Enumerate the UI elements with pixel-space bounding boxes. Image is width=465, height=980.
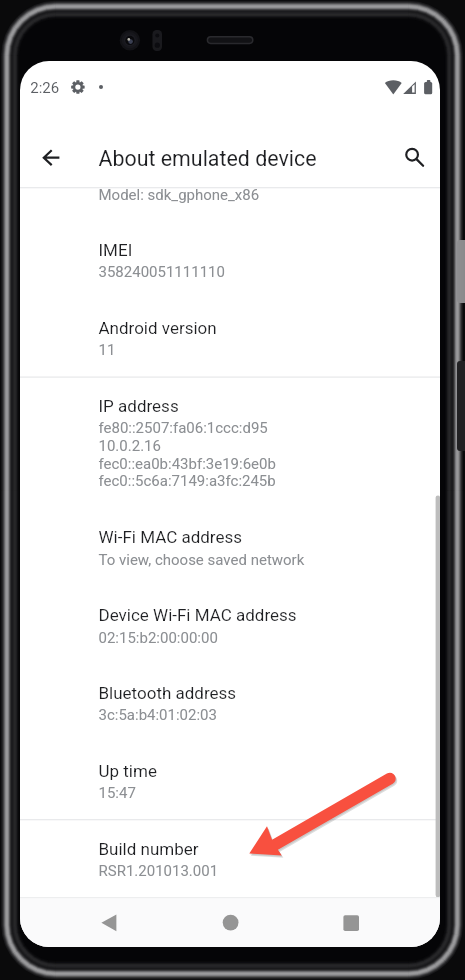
staticText: 02:15:b2:00:00:00 [98, 628, 218, 646]
button[interactable] [20, 663, 440, 741]
button[interactable]: Back [84, 897, 132, 947]
staticText: Up time [98, 761, 157, 781]
staticText: Wi-Fi MAC address [98, 527, 242, 547]
staticText: Model: sdk_gphone_x86 [98, 185, 259, 203]
button[interactable] [20, 819, 440, 897]
button[interactable] [20, 299, 440, 377]
staticText: 10.0.2.16 [98, 437, 161, 455]
button[interactable] [20, 507, 440, 585]
button[interactable] [20, 165, 440, 221]
staticText: 3c:5a:b4:01:02:03 [98, 706, 217, 724]
button[interactable]: Navigate up [26, 134, 74, 182]
button[interactable]: Home [206, 897, 254, 947]
staticText: Build number [98, 839, 199, 859]
staticText: fec0::5c6a:7149:a3fc:245b [98, 472, 276, 490]
staticText: Bluetooth address [98, 683, 236, 703]
staticText: IP address [98, 396, 179, 416]
staticText: 358240051111110 [98, 263, 225, 281]
staticText: 15:47 [98, 784, 136, 802]
button[interactable] [20, 741, 440, 819]
staticText: About emulated device [98, 146, 317, 171]
staticText: 11 [98, 341, 115, 359]
staticText: Android version [98, 318, 217, 338]
button[interactable] [20, 377, 440, 507]
button[interactable] [20, 585, 440, 663]
staticText: To view, choose saved network [98, 551, 304, 569]
staticText: RSR1.201013.001 [98, 862, 218, 880]
staticText: fec0::ea0b:43bf:3e19:6e0b [98, 455, 276, 473]
staticText: fe80::2507:fa06:1ccc:d95 [98, 419, 268, 437]
staticText: 2:26 [30, 79, 59, 97]
button[interactable]: Recent apps [327, 897, 375, 947]
staticText: IMEI [98, 240, 132, 260]
button[interactable] [20, 221, 440, 299]
staticText: Device Wi-Fi MAC address [98, 605, 297, 625]
button[interactable]: Search [388, 131, 436, 179]
